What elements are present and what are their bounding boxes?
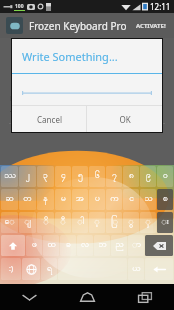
button[interactable]: Key [19, 166, 36, 187]
button[interactable]: Key [37, 212, 54, 233]
staticText: ှ [145, 216, 151, 229]
staticText: ၀ [163, 170, 168, 183]
staticText: Cancel [37, 114, 62, 125]
staticText: န [43, 193, 48, 206]
staticText: ၆ [95, 170, 100, 183]
button[interactable]: Cancel [12, 106, 86, 132]
button[interactable]: OK [87, 106, 162, 132]
staticText: :) [9, 264, 13, 274]
staticText: TEST TO TYPE [10, 109, 55, 119]
staticText: မ [61, 193, 66, 206]
button[interactable]: Key [140, 212, 156, 233]
button[interactable]: Key [72, 166, 88, 187]
button[interactable]: Key [140, 166, 156, 187]
staticText: ၂ [25, 170, 30, 183]
button[interactable]: Key [94, 235, 110, 256]
button[interactable]: Key [157, 212, 173, 233]
button[interactable]: Key [145, 235, 173, 256]
staticText: ဘ [98, 239, 107, 252]
button[interactable]: Key [140, 189, 156, 210]
staticText: တ [23, 193, 32, 206]
button[interactable]: Key [1, 235, 25, 256]
staticText: အ [76, 193, 84, 206]
staticText: က [110, 193, 119, 206]
button[interactable]: Key [89, 189, 105, 210]
button[interactable]: Key [106, 189, 122, 210]
staticText: OK [119, 114, 131, 125]
button[interactable]: Key [1, 258, 21, 280]
staticText: ာ [132, 239, 141, 252]
staticText: စ [163, 193, 168, 206]
staticText: ည [115, 239, 124, 252]
button[interactable]: Home [58, 284, 116, 310]
staticText: ၅ [78, 170, 83, 183]
button[interactable]: Key [60, 235, 76, 256]
button[interactable]: Key [145, 258, 173, 280]
button[interactable]: Key [72, 189, 88, 210]
button[interactable]: Key [106, 166, 122, 187]
staticText: 12:11 [150, 1, 171, 12]
staticText: င [129, 193, 134, 206]
button[interactable]: Key [26, 235, 42, 256]
button[interactable]: Key [43, 235, 59, 256]
staticText: ါ [77, 216, 84, 229]
button[interactable]: Key [157, 189, 173, 210]
button[interactable]: Key [123, 166, 139, 187]
button[interactable]: Key [77, 235, 93, 256]
staticText: languages [10, 94, 45, 104]
button[interactable]: Key [37, 189, 54, 210]
staticText: Frozen Keyboard Pro [29, 19, 127, 33]
button[interactable]: ACTIVATE! [134, 18, 168, 34]
button[interactable]: Key [55, 212, 71, 233]
button[interactable]: Key [128, 235, 144, 256]
button[interactable]: Key [89, 212, 105, 233]
button[interactable]: Key [1, 166, 18, 187]
staticText: ACTIVATE! [136, 22, 166, 30]
button[interactable]: Key [41, 258, 57, 280]
staticText: ျ [24, 216, 31, 229]
staticText: ခ [66, 239, 71, 252]
button[interactable]: Key [58, 258, 127, 280]
button[interactable]: Key [1, 189, 18, 210]
staticText: ြ [111, 216, 118, 229]
staticText: ၃ [43, 170, 48, 183]
button[interactable]: Key [37, 166, 54, 187]
button[interactable]: App icon [6, 17, 23, 34]
staticText: ၈ [129, 170, 134, 183]
staticText: ဿ [4, 170, 16, 183]
button[interactable]: Key [19, 189, 36, 210]
button[interactable] [22, 91, 152, 95]
button[interactable]: Key [123, 189, 139, 210]
staticText: ေ [4, 216, 15, 229]
button[interactable]: Key [128, 258, 144, 280]
staticText: း [161, 216, 169, 229]
button[interactable]: Key [157, 166, 173, 187]
staticText: ၉ [146, 170, 151, 183]
staticText: လ [81, 239, 89, 252]
staticText: ီ [60, 216, 66, 229]
button[interactable]: Key [111, 235, 127, 256]
button[interactable]: Key [106, 212, 122, 233]
staticText: ့ [94, 216, 100, 229]
button[interactable]: Key [72, 212, 88, 233]
button[interactable]: Key [123, 212, 139, 233]
staticText: ၇ [112, 170, 117, 183]
staticText: ယ [132, 263, 141, 276]
staticText: ဖ [32, 239, 37, 252]
staticText: Write Something... [22, 49, 118, 64]
button[interactable]: Back [0, 284, 58, 310]
button[interactable]: Recents [116, 284, 174, 310]
button[interactable]: Key [55, 189, 71, 210]
button[interactable]: Key [22, 258, 40, 280]
staticText: ရ [47, 263, 52, 276]
button[interactable]: Key [1, 212, 18, 233]
button[interactable]: Key [19, 212, 36, 233]
button[interactable]: Key [55, 166, 71, 187]
staticText: 100 [15, 3, 24, 10]
staticText: ွ [128, 216, 134, 229]
staticText: ိ [43, 216, 49, 229]
button[interactable]: Key [89, 166, 105, 187]
staticText: သ [144, 193, 153, 206]
staticText: ပ [95, 193, 100, 206]
staticText: ၄ [61, 170, 66, 183]
